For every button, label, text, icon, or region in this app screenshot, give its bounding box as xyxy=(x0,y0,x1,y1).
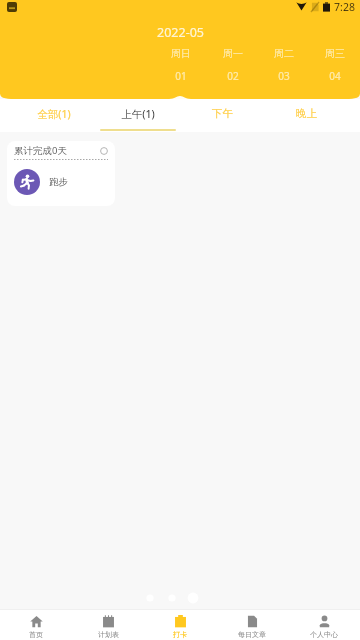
staticText: 01 xyxy=(175,69,187,83)
button[interactable]: 下午 xyxy=(180,99,264,128)
staticText: 打卡 xyxy=(173,630,187,639)
staticText: 计划表 xyxy=(98,630,119,639)
button[interactable]: 个人中心 xyxy=(288,611,360,639)
staticText: 全部(1) xyxy=(37,107,71,121)
staticText: 晚上 xyxy=(296,107,317,120)
button[interactable]: 晚上 xyxy=(264,99,348,128)
staticText: 跑步 xyxy=(49,176,68,188)
button[interactable]: 上午(1) xyxy=(96,99,180,131)
staticText: 04 xyxy=(329,69,341,83)
staticText: 周日 xyxy=(171,47,191,60)
button[interactable]: 周三 xyxy=(309,47,360,83)
staticText: 每日文章 xyxy=(238,630,266,639)
button[interactable]: 周日 xyxy=(155,47,207,83)
staticText: 累计完成0天 xyxy=(14,144,67,157)
button[interactable]: 全部(1) xyxy=(12,99,96,129)
staticText: 周二 xyxy=(274,47,294,60)
staticText: 03 xyxy=(278,69,290,83)
staticText: 上午(1) xyxy=(121,107,155,121)
button[interactable]: 每日文章 xyxy=(216,611,288,639)
staticText: 周一 xyxy=(223,47,243,60)
button[interactable]: 周二 xyxy=(258,47,309,83)
staticText: 个人中心 xyxy=(310,630,338,639)
staticText: 2022-05 xyxy=(157,24,204,41)
button[interactable]: 周一 xyxy=(207,47,258,83)
button[interactable]: 计划表 xyxy=(72,611,144,639)
staticText: 下午 xyxy=(212,107,233,120)
staticText: 首页 xyxy=(29,630,43,639)
staticText: 7:28 xyxy=(334,0,355,13)
button[interactable]: 打卡 xyxy=(144,611,216,639)
staticText: 02 xyxy=(227,69,239,83)
button[interactable]: 累计完成0天 xyxy=(7,141,115,206)
staticText: 周三 xyxy=(325,47,345,60)
button[interactable]: 首页 xyxy=(0,611,72,639)
